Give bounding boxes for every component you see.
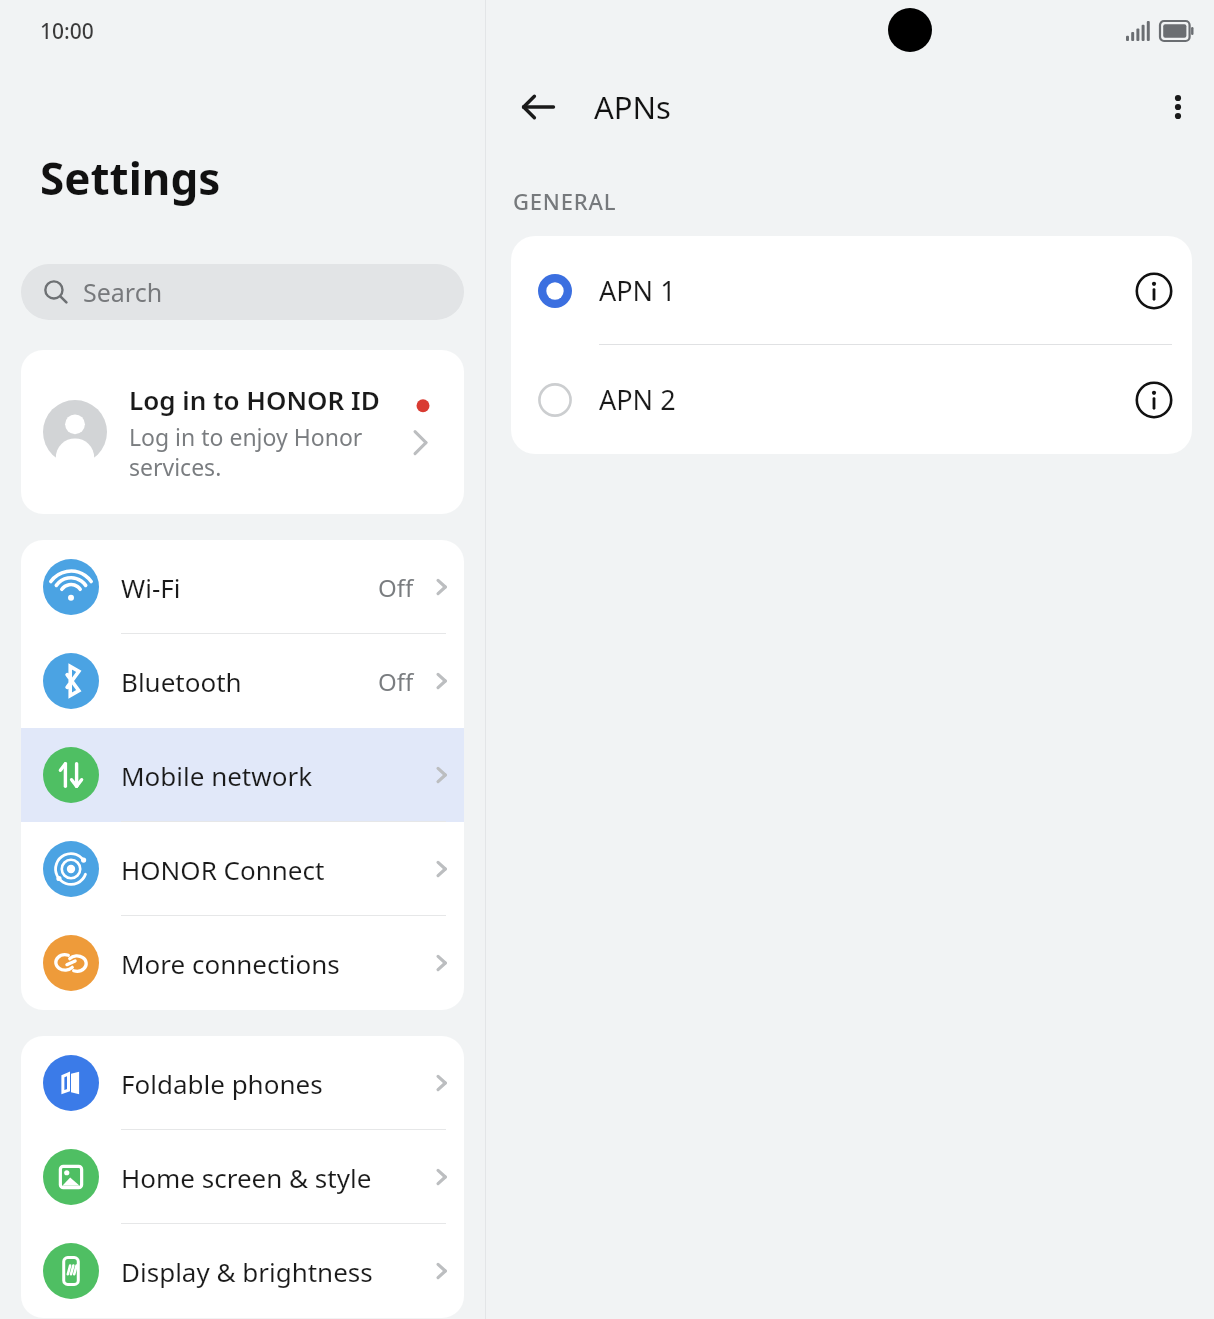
staticText: Off [378, 571, 414, 604]
staticText: APNs [594, 86, 671, 128]
staticText: APN 2 [599, 381, 1116, 418]
staticText: Settings [40, 148, 221, 208]
button[interactable]: About APN 2 [1116, 345, 1192, 454]
button[interactable]: Back [512, 81, 564, 133]
button[interactable]: APN 1 [511, 236, 1192, 345]
button[interactable]: Foldable phones [21, 1036, 464, 1130]
staticText: Display & brightness [121, 1254, 424, 1289]
button[interactable]: More options [1150, 79, 1206, 135]
button[interactable]: More connections [21, 916, 464, 1010]
staticText: Mobile network [121, 758, 424, 793]
button[interactable]: Display & brightness [21, 1224, 464, 1318]
staticText: Home screen & style [121, 1160, 424, 1195]
button[interactable]: Wi-Fi [21, 540, 464, 634]
staticText: More connections [121, 946, 424, 981]
staticText: GENERAL [513, 186, 617, 216]
staticText: Off [378, 665, 414, 698]
button[interactable]: HONOR Connect [21, 822, 464, 916]
staticText: 10:00 [40, 17, 94, 46]
staticText: HONOR Connect [121, 852, 424, 887]
button[interactable]: Mobile network [21, 728, 464, 822]
button[interactable]: APN 2 [511, 345, 1192, 454]
staticText: Bluetooth [121, 664, 378, 699]
staticText: Log in to enjoy Honor services. [129, 421, 404, 483]
button[interactable]: Search [21, 264, 464, 320]
staticText: Log in to HONOR ID [129, 382, 380, 417]
button[interactable]: About APN 1 [1116, 236, 1192, 345]
staticText: Search [83, 275, 163, 309]
button[interactable]: Bluetooth [21, 634, 464, 728]
staticText: Foldable phones [121, 1066, 424, 1101]
button[interactable]: Log in to HONOR ID [21, 350, 464, 514]
staticText: APN 1 [599, 272, 1116, 309]
staticText: Wi-Fi [121, 570, 378, 605]
button[interactable]: Home screen & style [21, 1130, 464, 1224]
